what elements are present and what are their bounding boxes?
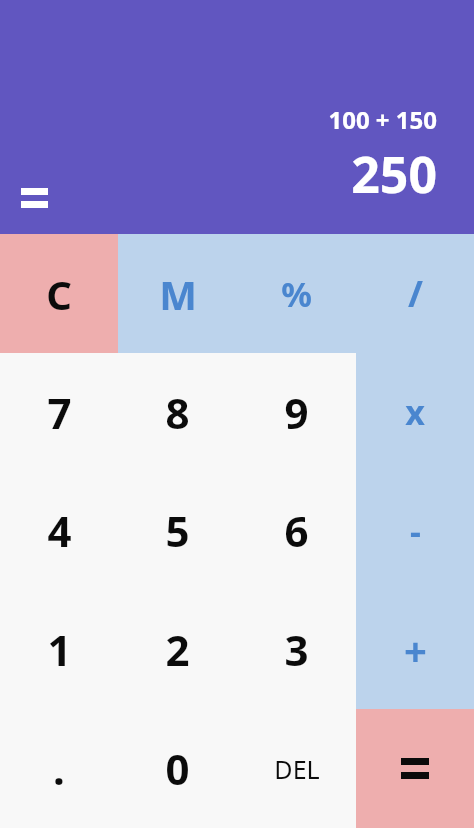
staticText: 6	[284, 502, 309, 559]
button[interactable]: 3	[237, 590, 356, 709]
staticText: 100 + 150	[328, 103, 437, 136]
staticText: /	[408, 269, 423, 318]
staticText: 8	[165, 384, 190, 441]
button[interactable]: -	[356, 471, 474, 590]
button[interactable]: 6	[237, 471, 356, 590]
staticText: %	[281, 271, 312, 317]
staticText: +	[404, 623, 427, 677]
button[interactable]: 1	[0, 590, 118, 709]
button[interactable]: 0	[118, 709, 237, 828]
staticText: 5	[165, 502, 190, 559]
staticText: 3	[284, 621, 309, 678]
button[interactable]: 7	[0, 353, 118, 471]
staticText: 250	[351, 140, 437, 208]
button[interactable]: Equals	[356, 709, 474, 828]
button[interactable]: 2	[118, 590, 237, 709]
staticText: DEL	[274, 752, 320, 786]
staticText: .	[53, 740, 65, 797]
button[interactable]: 8	[118, 353, 237, 471]
button[interactable]: .	[0, 709, 118, 828]
staticText: 4	[47, 502, 72, 559]
button[interactable]: 4	[0, 471, 118, 590]
button[interactable]: 5	[118, 471, 237, 590]
staticText: 7	[47, 384, 72, 441]
staticText: C	[46, 267, 72, 321]
button[interactable]: History	[10, 174, 58, 222]
button[interactable]: DEL	[237, 709, 356, 828]
staticText: 2	[165, 621, 190, 678]
staticText: 0	[165, 740, 190, 797]
staticText: 9	[284, 384, 309, 441]
button[interactable]: %	[237, 234, 356, 353]
button[interactable]: M	[118, 234, 237, 353]
button[interactable]: x	[356, 353, 474, 471]
button[interactable]: 9	[237, 353, 356, 471]
button[interactable]: +	[356, 590, 474, 709]
staticText: x	[405, 389, 425, 435]
button[interactable]: C	[0, 234, 118, 353]
button[interactable]: /	[356, 234, 474, 353]
staticText: M	[159, 267, 197, 321]
staticText: 1	[47, 621, 72, 678]
staticText: -	[410, 508, 421, 554]
